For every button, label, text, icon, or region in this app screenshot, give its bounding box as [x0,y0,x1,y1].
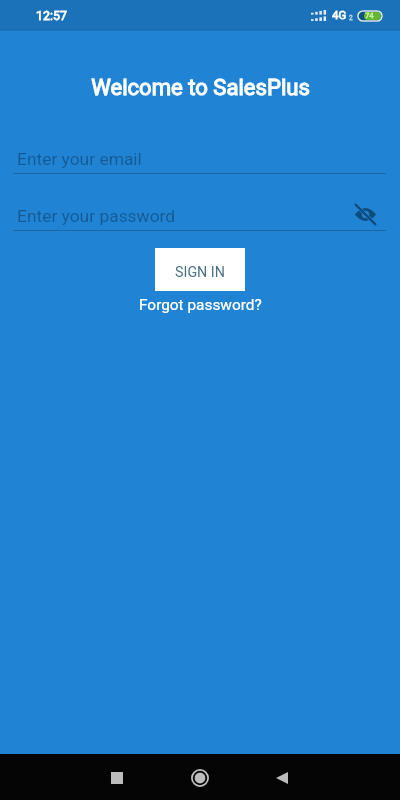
staticText: 74 [365,11,374,20]
button[interactable]: Enter your email [0,146,400,174]
button[interactable]: Toggle password visibility [351,200,379,228]
staticText: 4G [332,8,347,21]
staticText: SIGN IN [175,264,225,281]
staticText: Enter your email [17,149,142,169]
staticText: Welcome to SalesPlus [91,74,310,100]
staticText: Enter your password [17,206,176,226]
staticText: 2 [349,14,353,22]
button[interactable]: Recents [93,754,141,800]
button[interactable]: SIGN IN [155,248,245,291]
staticText: 12:57 [36,8,67,23]
button[interactable]: Home [176,754,224,800]
button[interactable]: Enter your password [0,203,400,231]
button[interactable]: Back [258,754,306,800]
button[interactable]: Forgot password? [133,294,268,316]
